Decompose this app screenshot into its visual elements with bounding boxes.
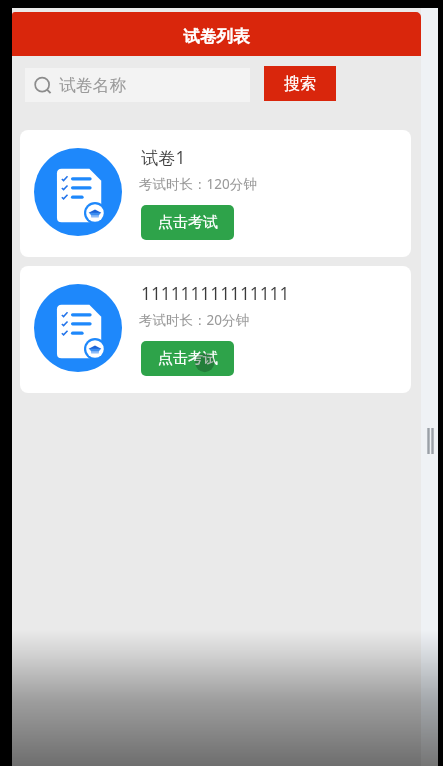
button[interactable]: 搜索: [264, 66, 336, 101]
button[interactable]: 111111111111111: [20, 266, 411, 393]
staticText: 111111111111111: [141, 282, 290, 306]
staticText: 试卷名称: [59, 75, 127, 96]
button[interactable]: 试卷1: [20, 130, 411, 257]
staticText: 搜索: [284, 74, 316, 94]
staticText: 试卷列表: [183, 26, 250, 47]
staticText: 试卷1: [141, 146, 186, 170]
button[interactable]: 点击考试: [141, 205, 234, 240]
other: Resize panel: [424, 428, 436, 454]
staticText: 点击考试: [158, 349, 218, 368]
staticText: 考试时长：120分钟: [139, 175, 257, 193]
button[interactable]: 点击考试: [141, 341, 234, 376]
staticText: 考试时长：20分钟: [139, 311, 249, 329]
staticText: 点击考试: [158, 213, 218, 232]
button[interactable]: 试卷名称: [25, 68, 250, 102]
